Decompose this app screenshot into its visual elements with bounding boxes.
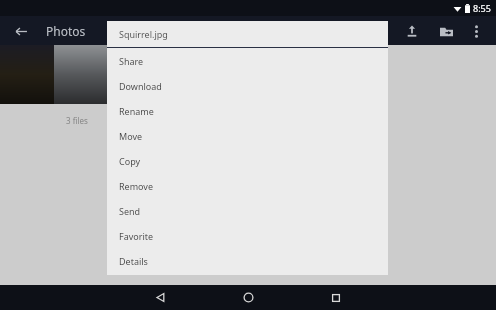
button[interactable] [54,45,108,104]
staticText: 3 files [66,115,88,126]
button[interactable]: Favorite [107,223,388,248]
button[interactable]: Rename [107,98,388,123]
button[interactable]: Upload [400,19,424,43]
staticText: Rename [119,105,154,117]
button[interactable]: Move [107,123,388,148]
staticText: Share [119,55,144,67]
button[interactable]: Recent apps [292,285,380,310]
button[interactable]: More options [466,21,486,41]
button[interactable]: Remove [107,173,388,198]
button[interactable]: Home [204,285,292,310]
button[interactable] [0,45,54,104]
button[interactable]: Back [116,285,204,310]
staticText: Remove [119,180,154,192]
button[interactable]: Share [107,48,388,73]
button[interactable]: Copy [107,148,388,173]
button[interactable]: Download [107,73,388,98]
staticText: Download [119,80,162,92]
staticText: Copy [119,155,141,167]
staticText: Details [119,255,148,267]
staticText: Favorite [119,230,154,242]
staticText: Photos [46,23,86,39]
button[interactable]: Move to folder [434,19,458,43]
staticText: 8:55 [473,2,491,14]
staticText: Squirrel.jpg [119,28,168,40]
staticText: Move [119,130,143,142]
staticText: Send [119,205,141,217]
button[interactable]: Send [107,198,388,223]
button[interactable]: Details [107,248,388,273]
button[interactable]: Back [10,20,32,42]
